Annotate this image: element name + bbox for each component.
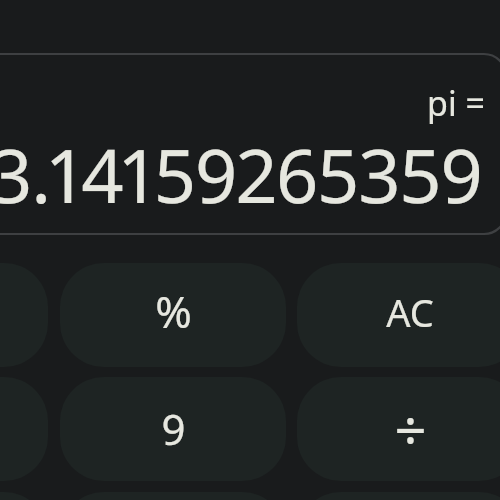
button[interactable]: Percent	[60, 263, 286, 367]
button[interactable]: 7	[0, 263, 48, 367]
button[interactable]: Multiply	[297, 492, 500, 500]
staticText: 9	[161, 400, 186, 457]
staticText: ÷	[394, 391, 427, 467]
button[interactable]: 5	[60, 492, 286, 500]
button[interactable]: AC	[297, 263, 500, 367]
staticText: %	[155, 281, 192, 341]
staticText: pi =	[427, 80, 485, 126]
staticText: AC	[386, 286, 434, 338]
button[interactable]: 8	[0, 377, 48, 481]
staticText: 3.14159265359	[0, 124, 482, 225]
button[interactable]: Divide	[297, 377, 500, 481]
button[interactable]: 9	[60, 377, 286, 481]
button[interactable]: 4	[0, 492, 48, 500]
